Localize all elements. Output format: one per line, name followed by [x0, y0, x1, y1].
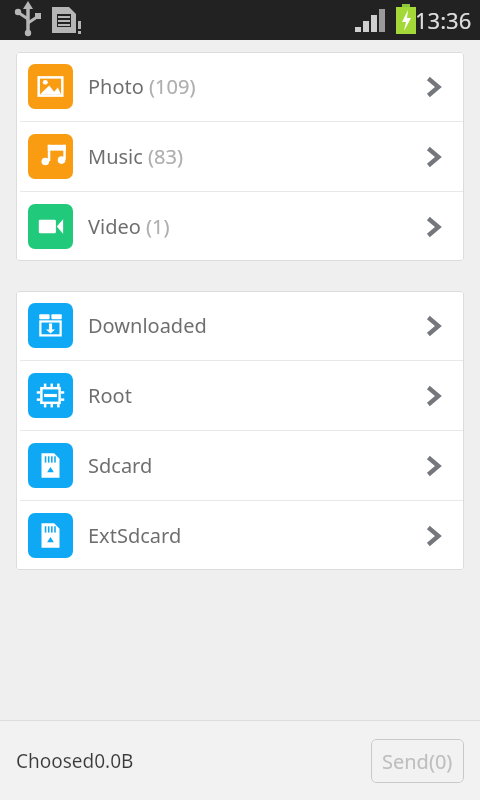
staticText: Root: [88, 382, 132, 409]
button[interactable]: Sdcard: [16, 431, 464, 500]
staticText: Music (83): [88, 143, 183, 170]
staticText: Photo (109): [88, 73, 196, 100]
button[interactable]: Photo (109): [16, 52, 464, 121]
button[interactable]: Video (1): [16, 192, 464, 261]
staticText: 13:36: [415, 5, 472, 35]
staticText: Video (1): [88, 213, 170, 240]
button[interactable]: Downloaded: [16, 291, 464, 360]
staticText: ExtSdcard: [88, 522, 182, 549]
staticText: Sdcard: [88, 452, 153, 479]
button[interactable]: Root: [16, 361, 464, 430]
button[interactable]: ExtSdcard: [16, 501, 464, 570]
staticText: Send(0): [382, 748, 453, 775]
staticText: Choosed0.0B: [16, 748, 134, 774]
button[interactable]: Send(0): [371, 739, 464, 783]
button[interactable]: Music (83): [16, 122, 464, 191]
staticText: Downloaded: [88, 312, 207, 339]
